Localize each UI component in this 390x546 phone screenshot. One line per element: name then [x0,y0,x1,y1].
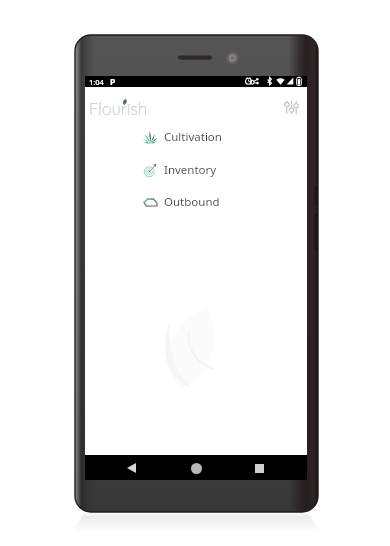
staticText: Outbound [164,194,220,210]
button[interactable]: Filters [282,98,300,116]
staticText: Inventory [164,162,217,178]
staticText: Cultivation [164,129,222,145]
button[interactable]: Inventory [85,154,307,186]
staticText: P [110,76,116,87]
button[interactable]: Home [185,457,207,479]
button[interactable]: Recent apps [248,457,270,479]
staticText: Flourish [89,98,148,119]
button[interactable]: Flourish [89,98,148,119]
button[interactable]: Outbound [85,186,307,218]
button[interactable]: Cultivation [85,121,307,153]
button[interactable]: Back [120,457,142,479]
staticText: 1:04 [89,77,104,87]
